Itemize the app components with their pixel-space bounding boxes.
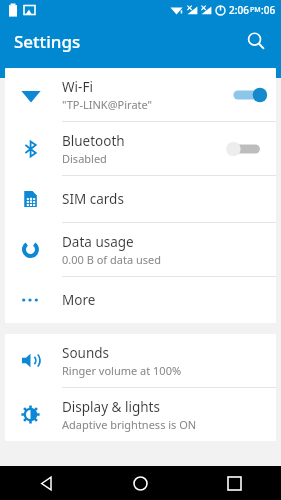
staticText: Ringer volume at 100% — [62, 363, 182, 378]
staticText: 0.00 B of data used — [62, 252, 161, 267]
staticText: Sounds — [62, 344, 110, 362]
button[interactable]: Home — [93, 466, 187, 500]
staticText: Bluetooth — [62, 132, 125, 150]
button[interactable]: More — [5, 277, 276, 323]
staticText: 2:06 — [229, 3, 249, 17]
button[interactable]: SIM cards — [5, 176, 276, 222]
button[interactable]: Toggle on — [230, 84, 264, 106]
button[interactable]: Bluetooth — [5, 122, 276, 175]
button[interactable]: Data usage — [5, 223, 276, 276]
staticText: Data usage — [62, 233, 134, 251]
staticText: Disabled — [62, 151, 107, 166]
button[interactable]: Display & lights — [5, 388, 276, 441]
staticText: "TP-LINK@Pirate" — [62, 97, 153, 112]
staticText: Wi-Fi — [62, 78, 93, 96]
staticText: PM — [250, 5, 261, 15]
staticText: More — [62, 291, 96, 309]
button[interactable]: Search — [239, 24, 273, 58]
button[interactable]: Back — [0, 466, 93, 500]
staticText: SIM cards — [62, 190, 124, 208]
staticText: Settings — [14, 30, 81, 53]
button[interactable]: Wi-Fi — [5, 68, 276, 121]
staticText: :06 — [261, 3, 276, 17]
button[interactable]: Sounds — [5, 334, 276, 387]
button[interactable]: Toggle off — [230, 138, 264, 160]
staticText: Display & lights — [62, 398, 160, 416]
staticText: Adaptive brightness is ON — [62, 417, 197, 432]
button[interactable]: Recent apps — [187, 466, 281, 500]
